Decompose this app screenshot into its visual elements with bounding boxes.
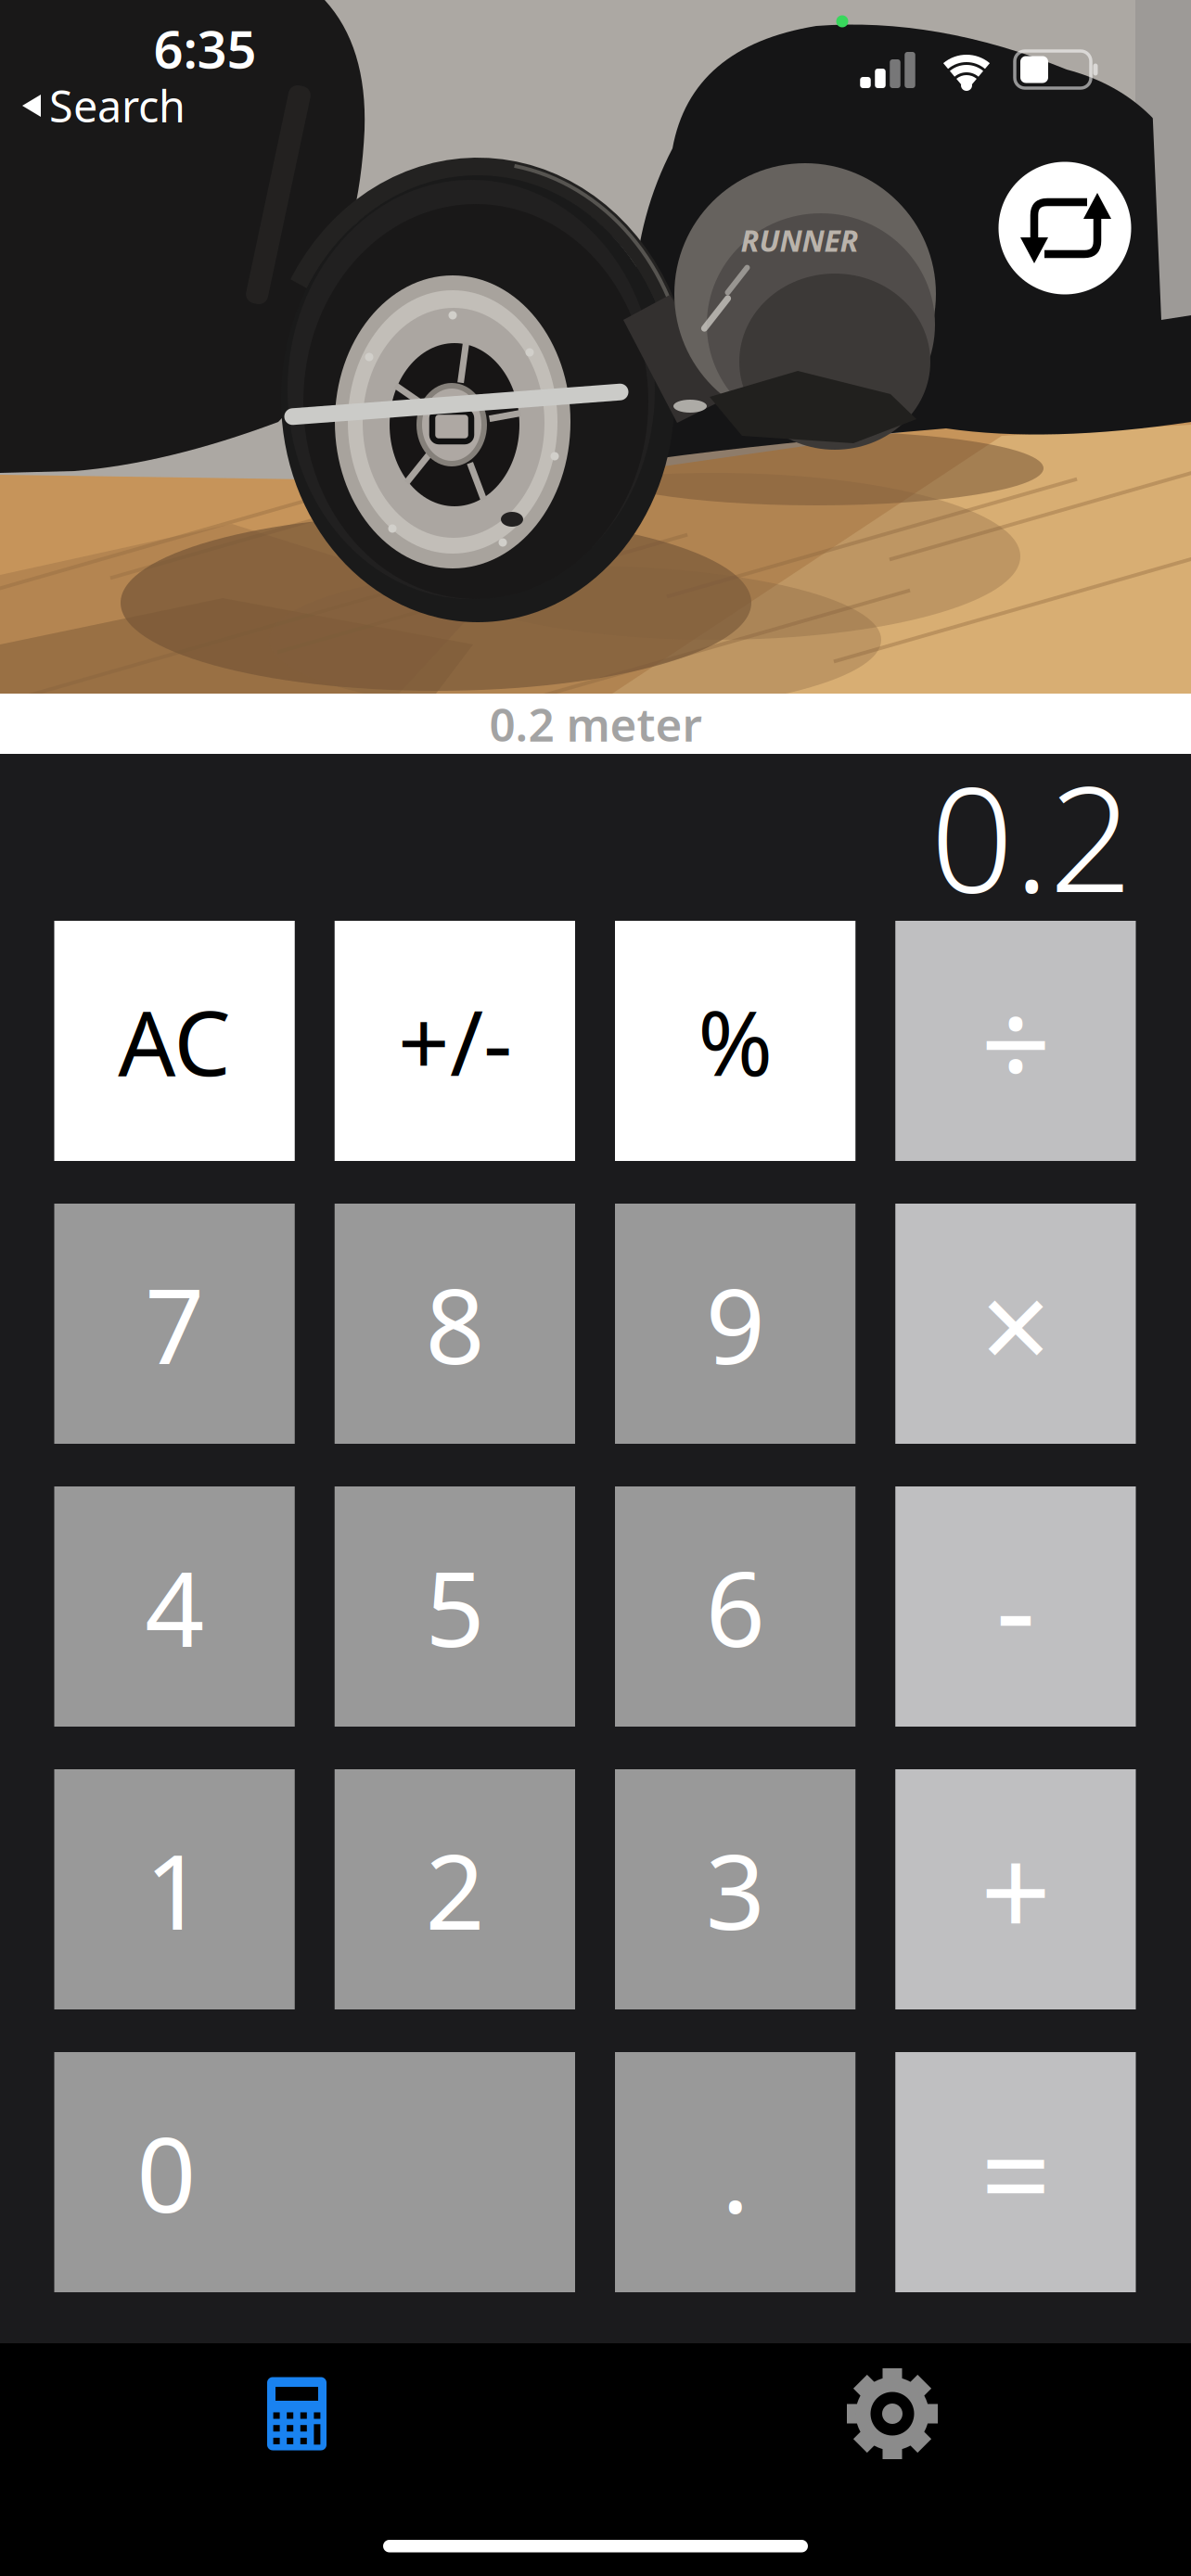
staticText: Search <box>49 77 186 134</box>
staticText: 2 <box>425 1820 485 1958</box>
button[interactable]: × <box>895 1204 1136 1444</box>
staticText: 4 <box>145 1538 204 1675</box>
button[interactable]: Search <box>22 77 186 134</box>
staticText: AC <box>118 981 231 1101</box>
button[interactable]: - <box>895 1486 1136 1727</box>
button[interactable]: 3 <box>615 1769 855 2009</box>
button[interactable]: Calculator <box>246 2363 348 2465</box>
staticText: % <box>698 981 773 1101</box>
staticText: × <box>980 1242 1051 1406</box>
staticText: 9 <box>706 1255 765 1393</box>
staticText: + <box>980 1807 1051 1972</box>
button[interactable]: . <box>615 2052 855 2292</box>
staticText: 0.2 meter <box>489 693 702 754</box>
staticText: 6 <box>706 1538 765 1675</box>
staticText: 8 <box>425 1255 485 1393</box>
staticText: = <box>980 2090 1051 2254</box>
staticText: 0.2 <box>930 739 1133 932</box>
button[interactable]: +/- <box>335 921 575 1161</box>
button[interactable]: Settings <box>841 2363 943 2465</box>
button[interactable]: AC <box>54 921 295 1161</box>
staticText: +/- <box>398 981 512 1101</box>
button[interactable]: 1 <box>54 1769 295 2009</box>
button[interactable]: = <box>895 2052 1136 2292</box>
staticText: 3 <box>706 1820 765 1958</box>
button[interactable]: 7 <box>54 1204 295 1444</box>
button[interactable]: % <box>615 921 855 1161</box>
staticText: 1 <box>145 1820 204 1958</box>
staticText: ÷ <box>980 959 1051 1123</box>
staticText: 0 <box>137 2103 196 2241</box>
button[interactable]: 6 <box>615 1486 855 1727</box>
button[interactable]: 8 <box>335 1204 575 1444</box>
staticText: . <box>721 2103 749 2241</box>
button[interactable]: 2 <box>335 1769 575 2009</box>
staticText: RUNNER <box>741 221 858 260</box>
button[interactable]: + <box>895 1769 1136 2009</box>
staticText: 7 <box>145 1255 204 1393</box>
staticText: 5 <box>425 1538 485 1675</box>
button[interactable]: 0 <box>54 2052 575 2292</box>
staticText: 6:35 <box>154 14 256 83</box>
button[interactable]: 5 <box>335 1486 575 1727</box>
button[interactable]: 9 <box>615 1204 855 1444</box>
button[interactable]: Restart measurement <box>999 162 1131 294</box>
button[interactable]: 4 <box>54 1486 295 1727</box>
button[interactable]: ÷ <box>895 921 1136 1161</box>
staticText: - <box>996 1524 1036 1689</box>
